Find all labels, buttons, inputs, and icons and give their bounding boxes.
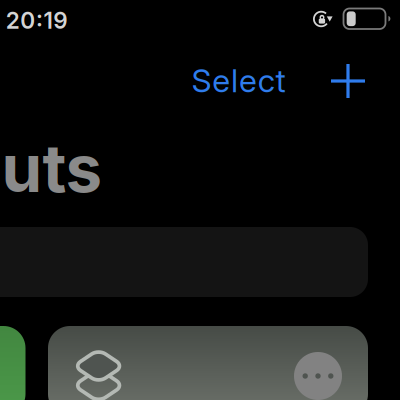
- button[interactable]: Shortcut: [48, 326, 368, 400]
- staticText: Shortcuts: [0, 129, 102, 208]
- button[interactable]: Select: [175, 60, 285, 100]
- staticText: 20:19: [6, 7, 67, 34]
- button[interactable]: Create shortcut: [326, 59, 370, 103]
- button[interactable]: More options: [294, 352, 342, 400]
- button[interactable]: Shortcut: [0, 326, 25, 400]
- staticText: Select: [191, 61, 285, 100]
